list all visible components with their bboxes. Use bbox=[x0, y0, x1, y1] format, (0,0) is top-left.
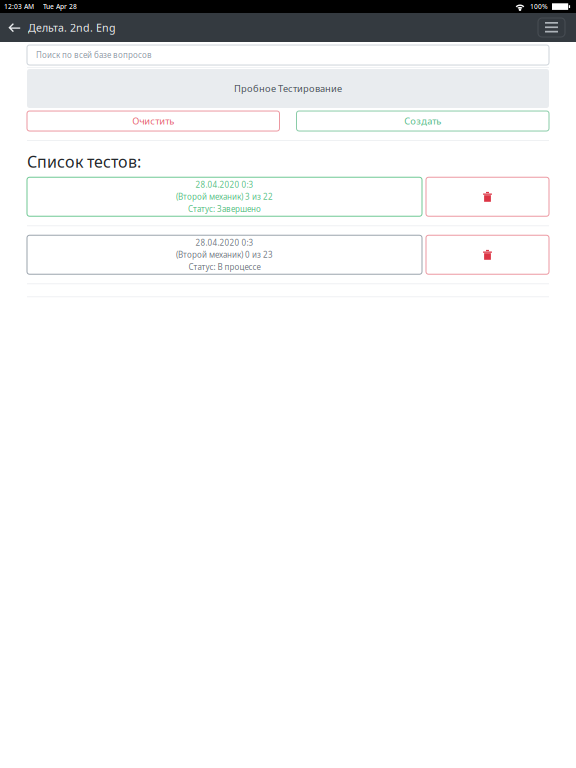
staticText: Статус: В процессе bbox=[188, 262, 260, 272]
staticText: Список тестов: bbox=[27, 151, 141, 172]
button[interactable]: Создать bbox=[296, 111, 549, 131]
button[interactable]: Очистить bbox=[27, 111, 279, 131]
staticText: (Второй механик) 0 из 23 bbox=[176, 249, 273, 260]
staticText: 28.04.2020 0:3 bbox=[195, 237, 253, 248]
staticText: Статус: Завершено bbox=[188, 204, 261, 214]
button[interactable]: Удалить тест bbox=[426, 177, 549, 216]
button[interactable]: 28.04.2020 0:3 bbox=[27, 235, 422, 274]
staticText: Дельта. 2nd. Eng bbox=[28, 20, 116, 35]
staticText: 12:03 AM bbox=[4, 2, 34, 11]
button[interactable]: Удалить тест bbox=[426, 235, 549, 274]
staticText: Tue Apr 28 bbox=[43, 2, 77, 11]
staticText: 28.04.2020 0:3 bbox=[195, 179, 253, 190]
staticText: Очистить bbox=[132, 115, 174, 127]
button[interactable]: 28.04.2020 0:3 bbox=[27, 177, 422, 216]
staticText: (Второй механик) 3 из 22 bbox=[176, 191, 273, 202]
staticText: Создать bbox=[404, 115, 441, 127]
staticText: 100% bbox=[530, 2, 548, 11]
button[interactable]: Меню bbox=[538, 18, 565, 37]
staticText: Пробное Тестирование bbox=[234, 82, 342, 95]
staticText: Поиск по всей базе вопросов bbox=[36, 50, 152, 60]
button[interactable]: Назад bbox=[0, 13, 28, 42]
